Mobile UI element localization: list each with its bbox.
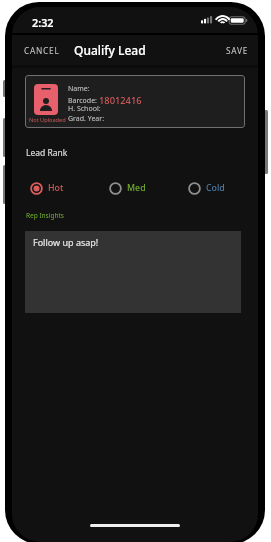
staticText: H. School: (68, 104, 101, 114)
staticText: Cold (206, 182, 225, 194)
staticText: 2:32 (32, 15, 54, 30)
staticText: 18012416 (99, 94, 142, 107)
staticText: Not Uploaded (29, 116, 66, 124)
button[interactable]: SAVE (219, 37, 256, 64)
button[interactable]: Cold (188, 180, 225, 196)
staticText: Rep Insights (26, 211, 64, 220)
button[interactable]: Not Uploaded (25, 75, 245, 128)
staticText: SAVE (226, 45, 249, 56)
staticText: Lead Rank (26, 147, 68, 159)
staticText: Med (127, 182, 146, 194)
staticText: CANCEL (24, 45, 60, 56)
staticText: Name: (68, 84, 90, 94)
staticText: Qualify Lead (74, 42, 146, 58)
staticText: Barcode: (68, 96, 99, 106)
button[interactable]: Follow up asap! (25, 231, 241, 313)
staticText: Hot (48, 182, 64, 194)
button[interactable]: Med (109, 180, 146, 196)
staticText: Follow up asap! (33, 236, 99, 248)
button[interactable]: CANCEL (17, 37, 67, 64)
staticText: Grad. Year: (68, 114, 105, 124)
button[interactable]: Hot (30, 180, 64, 196)
